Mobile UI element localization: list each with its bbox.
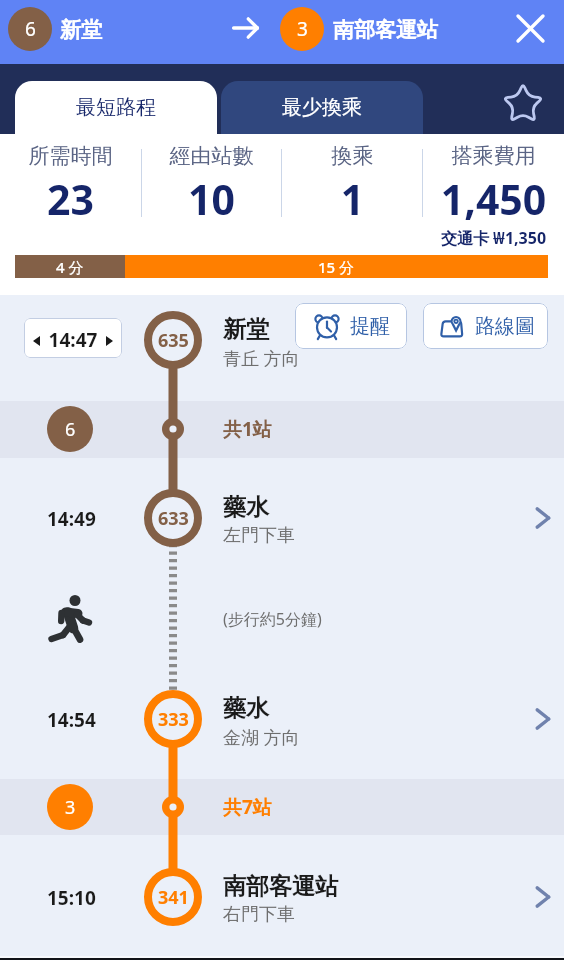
staticText: 藥水 [223, 694, 269, 723]
staticText: 新堂 [223, 315, 269, 344]
staticText: 新堂 [60, 17, 102, 43]
staticText: 搭乘費用 [423, 143, 564, 169]
staticText: 共7站 [223, 794, 272, 820]
staticText: 金湖 方向 [223, 725, 300, 750]
button[interactable]: Details [522, 498, 562, 538]
button[interactable]: 路線圖 [423, 303, 548, 349]
staticText: 交通卡 ₩1,350 [423, 227, 564, 249]
staticText: 經由站數 [141, 143, 282, 169]
button[interactable]: 14:47 [24, 318, 122, 358]
staticText: 藥水 [223, 493, 269, 522]
staticText: 10 [141, 171, 282, 227]
button[interactable]: 最短路程 [15, 81, 217, 134]
staticText: 3 [65, 795, 76, 820]
button[interactable]: Favourite [470, 64, 564, 134]
staticText: 最短路程 [76, 95, 156, 120]
button[interactable]: 提醒 [295, 303, 407, 349]
staticText: 換乘 [282, 143, 423, 169]
staticText: 1,450 [423, 171, 564, 227]
staticText: 共1站 [223, 416, 272, 442]
staticText: 15:10 [47, 885, 96, 911]
staticText: 14:49 [47, 506, 96, 532]
button[interactable]: Close [507, 5, 553, 51]
staticText: 路線圖 [475, 314, 535, 339]
staticText: 1 [282, 171, 423, 227]
staticText: 3 [297, 16, 308, 42]
button[interactable]: Details [522, 877, 562, 917]
staticText: 341 [158, 885, 189, 910]
staticText: 南部客運站 [223, 872, 338, 901]
button[interactable]: 最少換乘 [221, 81, 423, 134]
staticText: 右門下車 [223, 903, 295, 926]
staticText: 333 [158, 707, 189, 732]
staticText: 14:54 [47, 707, 96, 733]
staticText: 左門下車 [223, 524, 295, 547]
staticText: 14:47 [24, 327, 122, 353]
staticText: 所需時間 [0, 143, 141, 169]
staticText: 4 分 [56, 257, 84, 277]
staticText: 南部客運站 [333, 17, 438, 43]
staticText: 6 [65, 417, 76, 442]
staticText: 633 [158, 506, 189, 531]
staticText: 青丘 方向 [223, 346, 300, 371]
staticText: 提醒 [350, 314, 390, 339]
button[interactable]: Details [522, 699, 562, 739]
staticText: 6 [25, 16, 36, 42]
staticText: 635 [158, 328, 189, 353]
staticText: 15 分 [318, 257, 355, 277]
staticText: (步行約5分鐘) [223, 608, 322, 630]
staticText: 最少換乘 [282, 95, 362, 120]
staticText: 23 [0, 171, 141, 227]
